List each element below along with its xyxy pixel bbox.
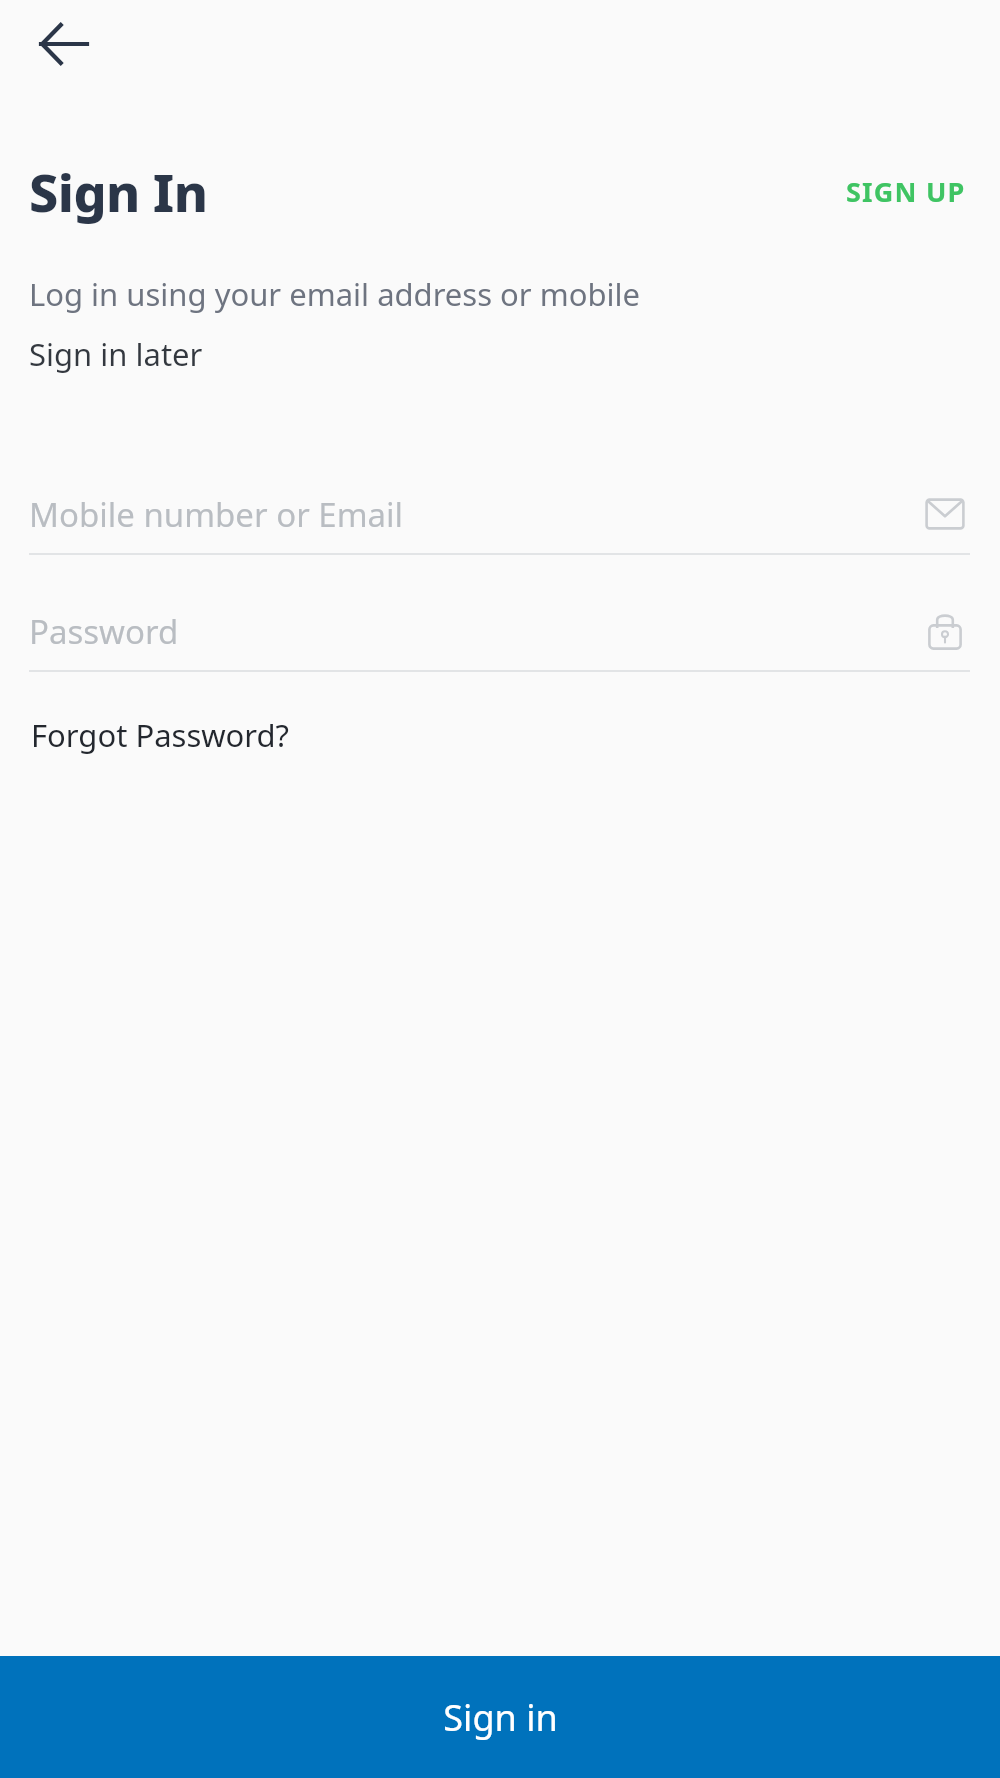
button[interactable]: Sign in <box>0 1656 1000 1778</box>
staticText: Mobile number or Email <box>29 492 404 537</box>
button[interactable]: Password <box>29 592 970 672</box>
button[interactable]: Back <box>30 10 98 78</box>
staticText: Password <box>29 609 179 654</box>
button: Sign In <box>29 156 208 227</box>
other: Email <box>920 489 970 539</box>
staticText: Forgot Password? <box>31 714 290 756</box>
other: Password <box>920 606 970 656</box>
button[interactable]: Forgot Password? <box>29 708 292 762</box>
button[interactable]: Mobile number or Email <box>29 475 970 555</box>
staticText: Sign in <box>443 1693 558 1742</box>
button[interactable]: Sign in later <box>29 333 203 375</box>
staticText: Log in using your email address or mobil… <box>29 273 640 315</box>
staticText: Sign in later <box>29 333 203 375</box>
staticText: SIGN UP <box>846 173 966 210</box>
button[interactable]: SIGN UP <box>842 165 970 218</box>
